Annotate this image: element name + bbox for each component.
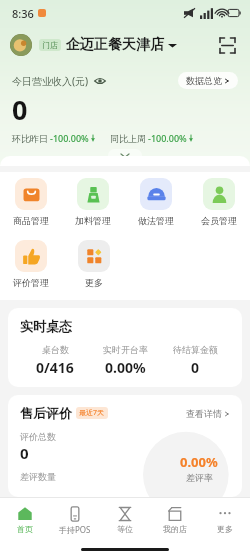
button[interactable]: 扫一扫: [214, 32, 240, 58]
button[interactable]: 显示或隐藏金额: [93, 74, 107, 88]
staticText: 会员管理: [201, 215, 237, 226]
staticText: 售后评价: [20, 405, 72, 421]
staticText: 0/416: [36, 358, 74, 377]
staticText: 同比上周: [110, 133, 146, 144]
staticText: 8:36: [12, 6, 34, 21]
button[interactable]: 加料管理: [62, 176, 124, 228]
button[interactable]: 更多: [200, 498, 250, 542]
staticText: 数据总览: [186, 75, 222, 86]
staticText: 环比昨日: [12, 133, 48, 144]
staticText: 评价管理: [13, 277, 49, 288]
button[interactable]: 会员管理: [187, 176, 250, 228]
staticText: 待结算金额: [173, 344, 218, 355]
button[interactable]: 更多: [62, 238, 125, 290]
button[interactable]: 评价管理: [0, 238, 62, 290]
staticText: 商品管理: [13, 215, 49, 226]
button[interactable]: 做法管理: [124, 176, 187, 228]
button[interactable]: 查看详情: [186, 408, 230, 419]
staticText: 桌台数: [42, 344, 69, 355]
staticText: 做法管理: [138, 215, 174, 226]
button[interactable]: 我的店: [150, 498, 200, 542]
staticText: 加料管理: [75, 215, 111, 226]
staticText: 更多: [217, 524, 233, 534]
staticText: 门店: [42, 40, 58, 50]
staticText: 等位: [117, 524, 133, 534]
staticText: 企迈正餐天津店: [66, 36, 164, 54]
button[interactable]: 门店: [39, 36, 177, 54]
staticText: 查看详情: [186, 408, 222, 419]
staticText: 差评率: [186, 472, 213, 483]
button[interactable]: 展开: [108, 149, 142, 162]
staticText: -100.00%: [50, 132, 89, 144]
button[interactable]: 手持POS: [50, 498, 100, 542]
staticText: 我的店: [163, 524, 187, 534]
button[interactable]: 商品管理: [0, 176, 62, 228]
button[interactable]: 实时桌态: [8, 308, 242, 387]
button[interactable]: 等位: [100, 498, 150, 542]
staticText: 实时开台率: [103, 344, 148, 355]
staticText: 实时桌态: [20, 318, 72, 334]
staticText: 首页: [17, 524, 33, 534]
staticText: 评价总数: [20, 431, 56, 442]
staticText: -100.00%: [148, 132, 187, 144]
staticText: 今日营业收入(元): [12, 74, 89, 88]
staticText: 0: [20, 443, 29, 463]
button[interactable]: [10, 34, 32, 56]
staticText: 0.00%: [180, 453, 218, 471]
staticText: 0: [191, 358, 200, 377]
staticText: 差评数量: [20, 471, 56, 482]
button[interactable]: 首页: [0, 498, 50, 542]
staticText: 0.00%: [105, 358, 146, 377]
staticText: 手持POS: [59, 524, 91, 535]
button[interactable]: 数据总览: [178, 72, 238, 89]
staticText: 更多: [85, 277, 103, 288]
staticText: 0: [12, 91, 28, 128]
staticText: 最近7天: [79, 408, 105, 418]
